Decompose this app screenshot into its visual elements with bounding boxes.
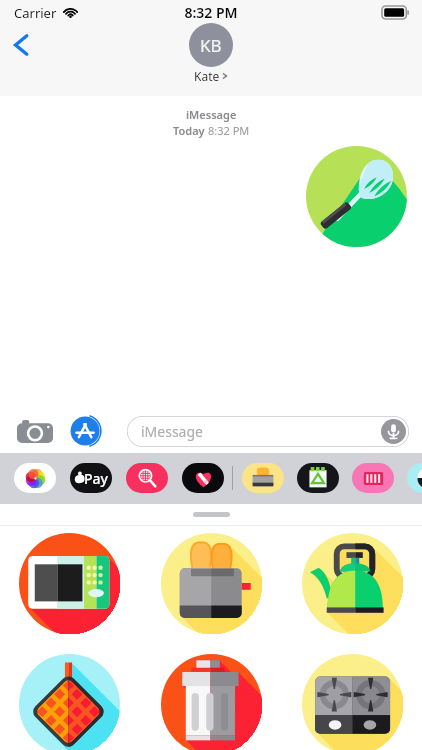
button[interactable]: App 3 [182, 463, 224, 493]
button[interactable]: Sticker 3 [19, 654, 120, 750]
button[interactable]: App Store [70, 413, 108, 449]
button[interactable]: Back [2, 25, 42, 65]
staticText: Carrier [14, 4, 57, 22]
button[interactable]: Sticker 1 [161, 533, 262, 634]
staticText: 8:32 PM [0, 3, 422, 22]
button[interactable]: Whisk sticker [306, 146, 407, 247]
button[interactable]: App 1 [70, 463, 112, 493]
staticText: iMessage [186, 107, 237, 122]
button[interactable]: App 4 [242, 463, 284, 493]
button[interactable]: Sticker 0 [19, 533, 120, 634]
button[interactable]: App 6 [352, 463, 394, 493]
button[interactable]: Sticker 4 [161, 654, 262, 750]
button[interactable]: App 2 [126, 463, 168, 493]
staticText: 8:32 PM [208, 123, 250, 138]
staticText: Kate [194, 68, 220, 84]
staticText: Pay [84, 469, 108, 488]
button[interactable]: iMessage [127, 416, 409, 447]
staticText: iMessage [141, 422, 203, 441]
button[interactable]: Sticker 5 [302, 654, 403, 750]
button[interactable]: App 7 [407, 463, 422, 493]
button[interactable]: Sticker 2 [302, 533, 403, 634]
button[interactable]: App 0 [14, 463, 56, 493]
button[interactable]: App 5 [297, 463, 339, 493]
button[interactable]: Camera [14, 414, 55, 448]
staticText: KB [200, 34, 222, 57]
button[interactable]: KB [189, 23, 233, 67]
staticText: Today [173, 123, 208, 138]
